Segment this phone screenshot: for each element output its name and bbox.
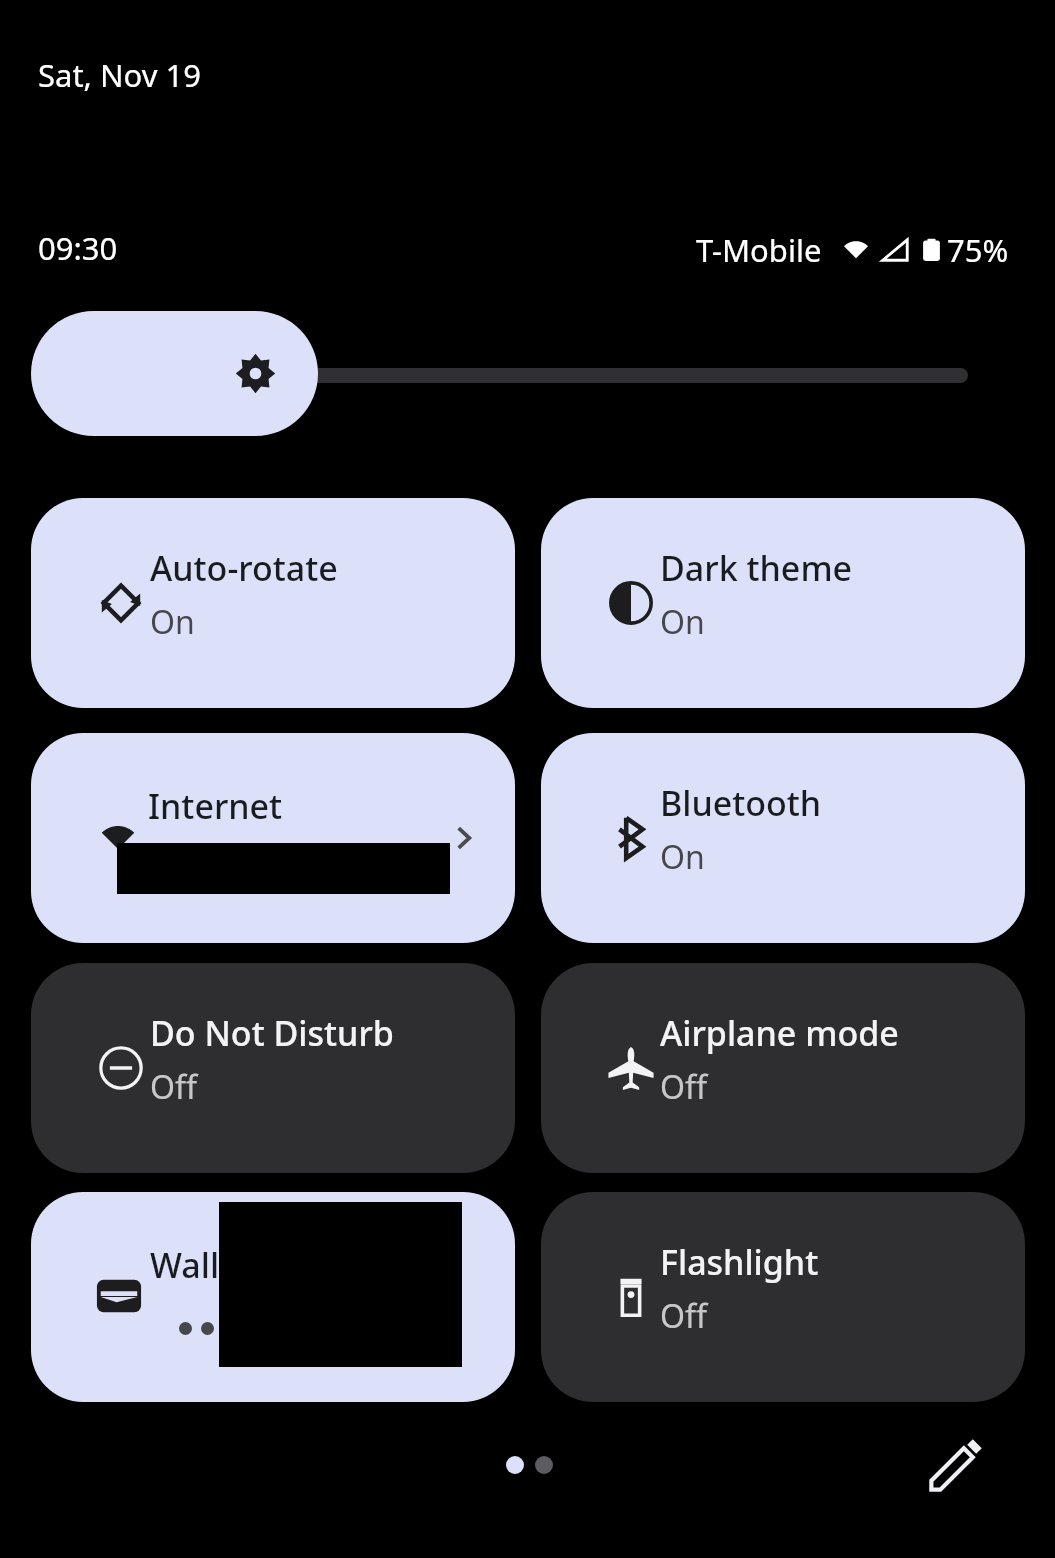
staticText: Dark theme <box>660 545 853 591</box>
staticText: Auto-rotate <box>150 545 338 591</box>
staticText: Internet <box>148 783 283 829</box>
button[interactable]: Wall <box>31 1192 515 1402</box>
button[interactable]: Internet <box>31 733 515 943</box>
staticText: Wall <box>150 1242 220 1288</box>
button[interactable]: Bluetooth <box>541 733 1025 943</box>
button[interactable]: Do Not Disturb <box>31 963 515 1173</box>
staticText: On <box>150 600 195 644</box>
staticText: Do Not Disturb <box>150 1010 394 1056</box>
staticText: Off <box>660 1065 708 1109</box>
staticText: Off <box>150 1065 198 1109</box>
staticText: T-Mobile <box>696 229 822 271</box>
button[interactable]: Auto-rotate <box>31 498 515 708</box>
staticText: 75% <box>947 229 1009 271</box>
staticText: 09:30 <box>38 227 118 269</box>
staticText: Airplane mode <box>660 1010 899 1056</box>
staticText: Sat, Nov 19 <box>38 54 201 96</box>
button[interactable]: Brightness <box>31 311 318 436</box>
staticText: Flashlight <box>660 1239 819 1285</box>
button[interactable]: Dark theme <box>541 498 1025 708</box>
staticText: On <box>660 600 705 644</box>
staticText: Bluetooth <box>660 780 822 826</box>
staticText: On <box>660 835 705 879</box>
button[interactable]: Airplane mode <box>541 963 1025 1173</box>
button[interactable]: Edit tiles <box>908 1417 1004 1513</box>
staticText: Off <box>660 1294 708 1338</box>
button[interactable]: Flashlight <box>541 1192 1025 1402</box>
